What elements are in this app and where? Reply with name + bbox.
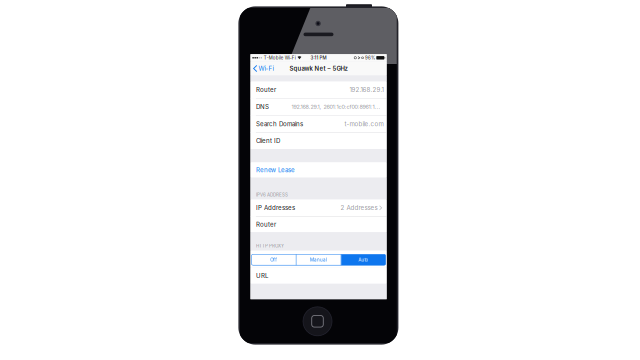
button[interactable]: DNS bbox=[250, 98, 387, 116]
button[interactable]: Router bbox=[250, 217, 387, 232]
staticText: t-mobile.com bbox=[344, 120, 383, 128]
staticText: URL bbox=[256, 272, 268, 279]
button[interactable]: Off bbox=[251, 254, 296, 265]
staticText: IPV6 ADDRESS bbox=[256, 192, 288, 198]
staticText: 3:11 PM bbox=[311, 55, 327, 61]
staticText: Wi-Fi bbox=[258, 65, 273, 72]
staticText: Manual bbox=[310, 257, 327, 262]
staticText: Auto bbox=[358, 257, 368, 262]
button[interactable]: Client ID bbox=[250, 133, 387, 149]
staticText: DNS bbox=[256, 103, 269, 110]
staticText: Client ID bbox=[256, 137, 280, 144]
button[interactable]: Auto bbox=[341, 254, 386, 265]
button[interactable]: Manual bbox=[296, 254, 341, 265]
staticText: T-Mobile Wi-Fi bbox=[264, 55, 296, 60]
staticText: IP Addresses bbox=[256, 204, 295, 211]
staticText: 96% bbox=[365, 55, 375, 60]
staticText: Squawk Net – 5GHz bbox=[290, 65, 348, 72]
button[interactable]: Renew Lease bbox=[250, 162, 387, 178]
staticText: Off bbox=[270, 257, 277, 262]
button[interactable]: Search Domains bbox=[250, 116, 387, 133]
staticText: 192.168.29.1, 2601:1c0:cf00:8961:1... bbox=[291, 103, 380, 110]
staticText: Renew Lease bbox=[256, 166, 295, 174]
button[interactable]: Wi-Fi bbox=[250, 61, 276, 76]
staticText: Router bbox=[256, 86, 276, 93]
staticText: HTTP PROXY bbox=[256, 243, 284, 249]
button[interactable]: IP Addresses bbox=[250, 199, 387, 217]
staticText: 192.168.29.1 bbox=[349, 86, 383, 93]
staticText: 2 Addresses bbox=[340, 204, 377, 211]
staticText: Search Domains bbox=[256, 120, 303, 128]
button[interactable]: Router bbox=[250, 81, 387, 98]
button[interactable]: URL bbox=[250, 268, 387, 284]
staticText: Router bbox=[256, 221, 276, 228]
